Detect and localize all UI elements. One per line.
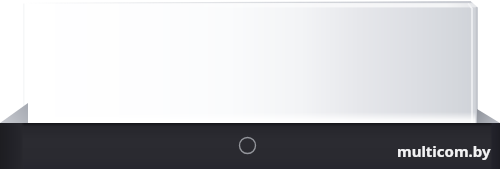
button[interactable]: Power <box>235 133 259 157</box>
staticText: multicom.by <box>397 141 491 161</box>
